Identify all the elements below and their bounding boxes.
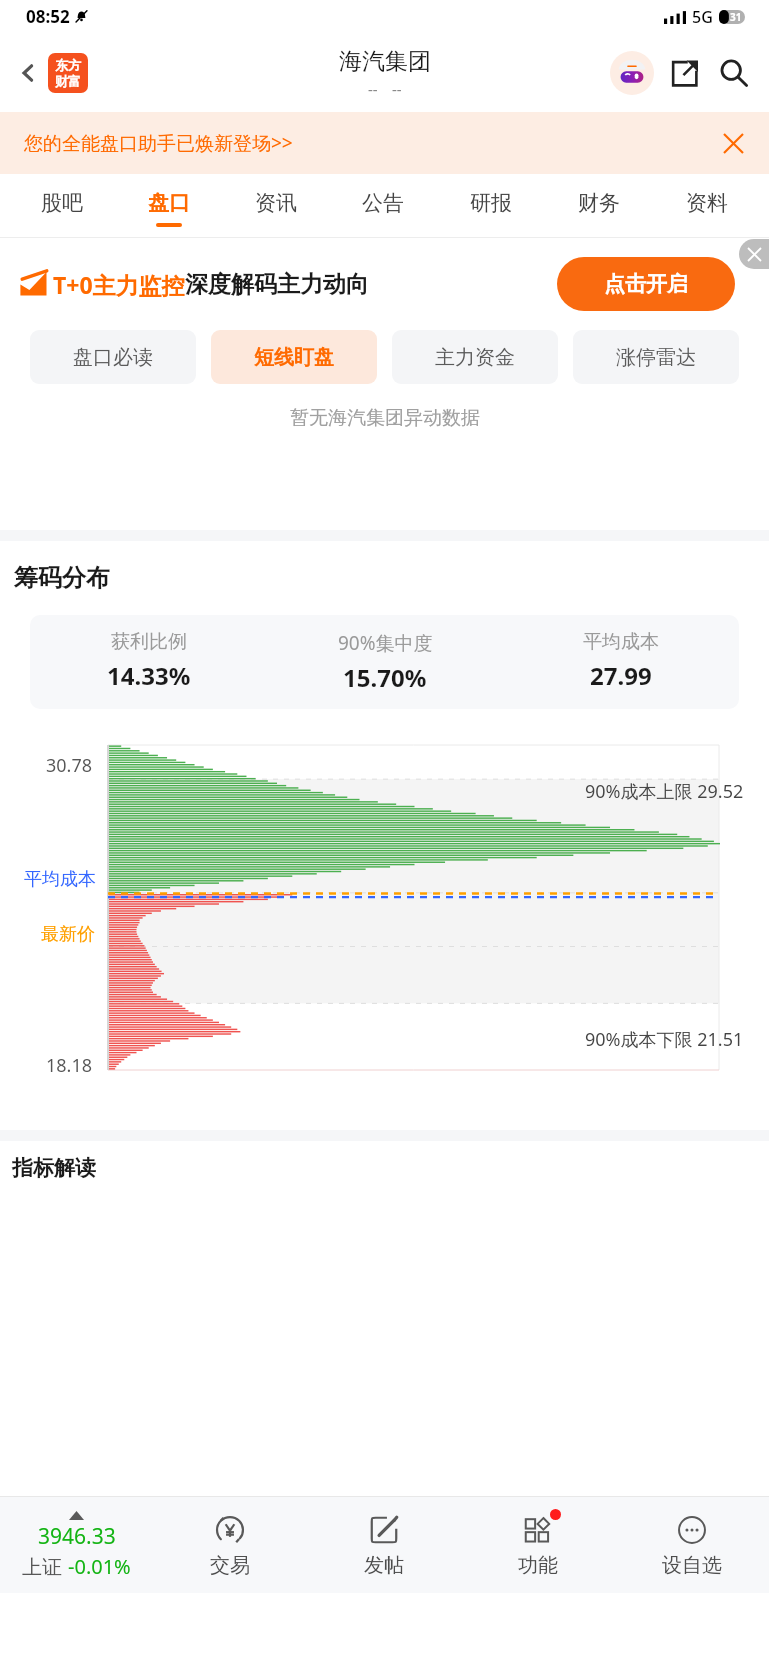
staticText: T+0主力监控	[53, 269, 185, 300]
staticText: --	[392, 79, 402, 99]
staticText: 平均成本	[24, 868, 96, 891]
staticText: 获利比例	[111, 630, 187, 654]
staticText: 设自选	[662, 1553, 722, 1578]
staticText: 财富	[55, 73, 81, 89]
staticText: 股吧	[41, 190, 83, 216]
button[interactable]: 研报	[437, 174, 545, 238]
staticText: 最新价	[41, 923, 95, 946]
staticText: 海汽集团	[339, 47, 431, 76]
button[interactable]: Search	[711, 50, 757, 96]
staticText: 暂无海汽集团异动数据	[290, 406, 480, 430]
button[interactable]: 主力资金	[392, 330, 558, 384]
button[interactable]: Back	[10, 55, 46, 91]
staticText: 90%成本下限 21.51	[585, 1027, 744, 1052]
button[interactable]: Close ad	[739, 239, 769, 269]
staticText: 筹码分布	[14, 563, 110, 593]
staticText: 研报	[470, 190, 512, 216]
button[interactable]: 东方	[48, 53, 88, 93]
staticText: 发帖	[364, 1553, 404, 1578]
button[interactable]: Close	[713, 123, 753, 163]
staticText: 点击开启	[604, 271, 688, 297]
staticText: 功能	[518, 1553, 558, 1578]
button[interactable]: 股吧	[8, 174, 115, 238]
staticText: 深度解码主力动向	[185, 270, 369, 299]
staticText: 交易	[210, 1553, 250, 1578]
staticText: 上证	[22, 1553, 68, 1580]
staticText: 涨停雷达	[616, 345, 696, 370]
staticText: 31	[730, 10, 742, 24]
staticText: 18.18	[46, 1053, 93, 1078]
staticText: 平均成本	[583, 630, 659, 654]
staticText: 90%集中度	[338, 630, 433, 656]
staticText: 您的全能盘口助手已焕新登场>>	[24, 130, 293, 156]
button[interactable]: 资讯	[222, 174, 329, 238]
staticText: 公告	[362, 190, 404, 216]
staticText: 15.70%	[343, 661, 427, 694]
button[interactable]: 3946.33	[0, 1497, 153, 1593]
staticText: 5G	[692, 6, 713, 28]
button[interactable]: 公告	[329, 174, 437, 238]
button[interactable]: 盘口必读	[30, 330, 196, 384]
button[interactable]: 短线盯盘	[211, 330, 377, 384]
staticText: 盘口	[148, 190, 190, 216]
staticText: 08:52	[26, 5, 70, 28]
staticText: 27.99	[590, 659, 652, 692]
button[interactable]: 您的全能盘口助手已焕新登场>>	[0, 112, 769, 174]
staticText: 短线盯盘	[254, 345, 334, 370]
button[interactable]: 点击开启	[557, 257, 735, 311]
staticText: 资讯	[255, 190, 297, 216]
staticText: 东方	[55, 57, 81, 73]
staticText: 指标解读	[12, 1155, 96, 1181]
button[interactable]: 资料	[653, 174, 761, 238]
staticText: 3946.33	[38, 1522, 116, 1551]
button[interactable]: 发帖	[307, 1497, 461, 1593]
staticText: 财务	[578, 190, 620, 216]
button[interactable]: 交易	[153, 1497, 307, 1593]
button[interactable]: AI Assistant	[609, 50, 655, 96]
staticText: 资料	[686, 190, 728, 216]
staticText: 主力资金	[435, 345, 515, 370]
button[interactable]: 财务	[545, 174, 653, 238]
staticText: --	[368, 79, 378, 99]
button[interactable]: 功能	[461, 1497, 615, 1593]
staticText: -0.01%	[68, 1553, 131, 1580]
staticText: 盘口必读	[73, 345, 153, 370]
button[interactable]: 涨停雷达	[573, 330, 739, 384]
staticText: 14.33%	[107, 659, 191, 692]
button[interactable]: 盘口	[115, 174, 222, 238]
staticText: 90%成本上限 29.52	[585, 779, 744, 804]
button[interactable]: Share	[661, 50, 707, 96]
staticText: 30.78	[46, 753, 93, 778]
button[interactable]: 设自选	[615, 1497, 769, 1593]
